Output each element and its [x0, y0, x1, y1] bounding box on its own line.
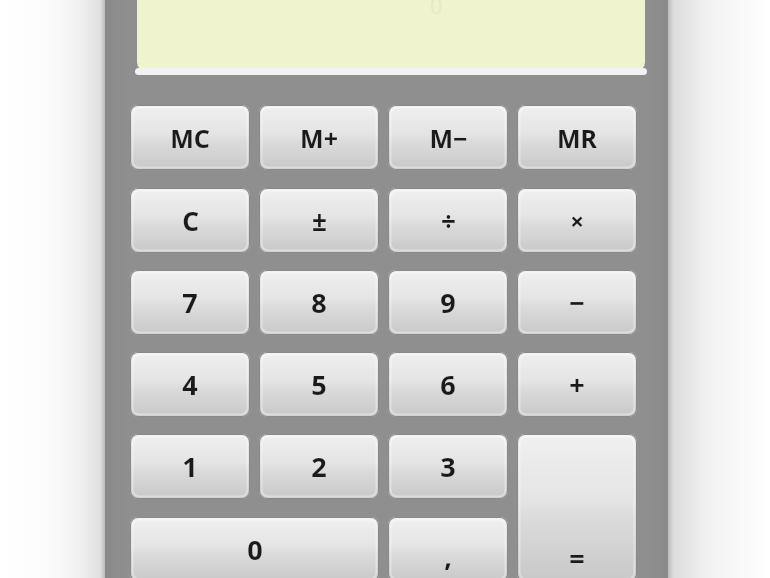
staticText: , — [444, 538, 452, 575]
button[interactable]: Minus — [517, 270, 637, 335]
staticText: ± — [312, 203, 327, 238]
button[interactable]: 7 — [130, 270, 250, 335]
button[interactable]: Equals — [517, 434, 637, 578]
staticText: = — [569, 540, 585, 577]
staticText: 4 — [182, 366, 198, 403]
button[interactable]: 9 — [388, 270, 508, 335]
staticText: × — [570, 204, 584, 237]
button[interactable]: Plus — [517, 352, 637, 417]
button[interactable]: 8 — [259, 270, 379, 335]
button[interactable]: C — [130, 188, 250, 253]
staticText: 2 — [311, 448, 327, 485]
staticText: 5 — [311, 366, 327, 403]
staticText: C — [182, 203, 199, 238]
button[interactable]: Multiply — [517, 188, 637, 253]
button[interactable]: MC — [130, 105, 250, 170]
staticText: M+ — [300, 121, 338, 155]
button[interactable]: M− — [388, 105, 508, 170]
staticText: 0 — [247, 531, 263, 568]
button[interactable]: 4 — [130, 352, 250, 417]
staticText: + — [569, 366, 585, 403]
button[interactable]: 2 — [259, 434, 379, 499]
button[interactable]: 3 — [388, 434, 508, 499]
staticText: 0 — [430, 0, 443, 20]
button[interactable]: Decimal comma — [388, 517, 508, 578]
staticText: 3 — [440, 448, 456, 485]
staticText: − — [569, 284, 585, 321]
staticText: M− — [429, 121, 468, 155]
staticText: 8 — [311, 284, 327, 321]
staticText: 9 — [440, 284, 456, 321]
button[interactable]: 5 — [259, 352, 379, 417]
button[interactable]: 6 — [388, 352, 508, 417]
staticText: 1 — [182, 448, 198, 485]
staticText: MC — [170, 121, 210, 155]
button[interactable]: 1 — [130, 434, 250, 499]
button[interactable]: 0 — [130, 517, 379, 578]
staticText: 7 — [182, 284, 198, 321]
button[interactable]: MR — [517, 105, 637, 170]
staticText: MR — [557, 121, 597, 155]
staticText: ÷ — [441, 203, 456, 238]
staticText: 6 — [440, 366, 456, 403]
button[interactable]: M+ — [259, 105, 379, 170]
button[interactable]: Plus minus — [259, 188, 379, 253]
button[interactable]: Divide — [388, 188, 508, 253]
